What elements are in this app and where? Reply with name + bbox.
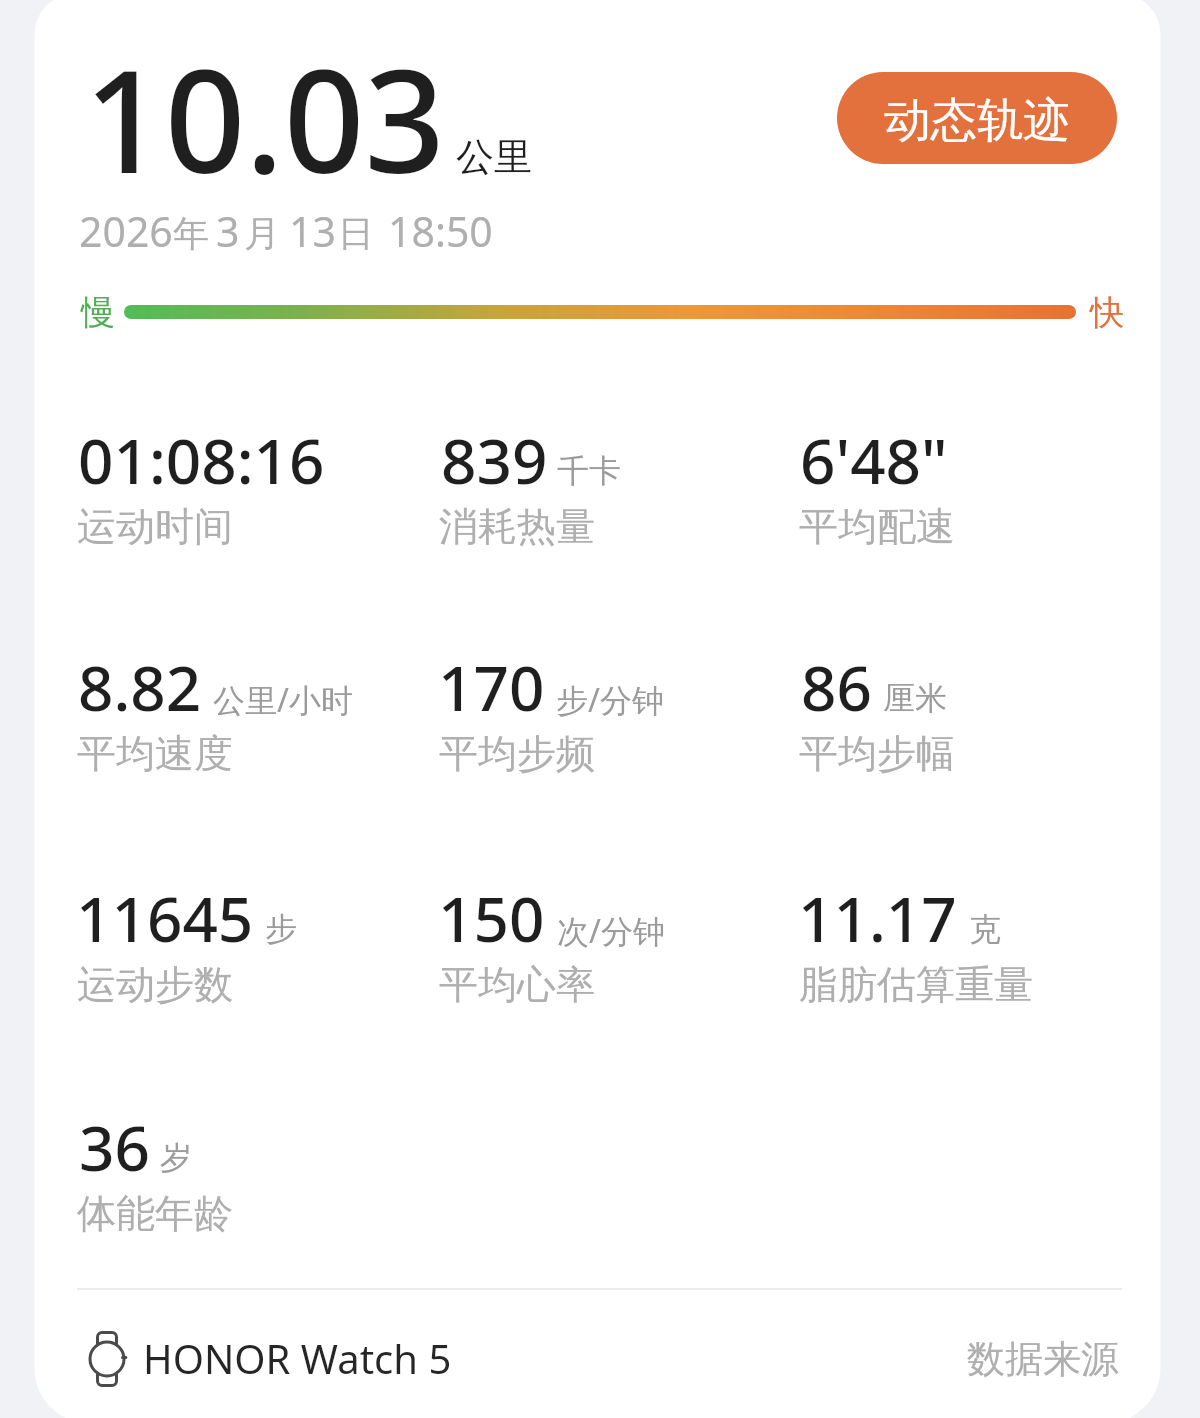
staticText: 839: [441, 418, 548, 502]
staticText: 次/分钟: [557, 909, 665, 953]
staticText: 年: [173, 211, 209, 256]
staticText: 11645: [76, 876, 254, 960]
staticText: 数据来源: [967, 1335, 1119, 1383]
staticText: 01:08:16: [78, 418, 325, 502]
button[interactable]: 数据来源: [947, 1317, 1132, 1401]
staticText: 150: [438, 876, 545, 960]
staticText: 厘米: [883, 678, 947, 718]
other: HONOR Watch 5 device: [88, 1331, 126, 1387]
staticText: 公里: [456, 133, 532, 181]
staticText: 平均步频: [439, 729, 595, 778]
staticText: 公里/小时: [213, 678, 353, 722]
staticText: 克: [969, 909, 1001, 949]
staticText: 脂肪估算重量: [799, 960, 1033, 1009]
staticText: 岁: [160, 1138, 192, 1178]
staticText: 消耗热量: [439, 502, 595, 551]
button[interactable]: HONOR Watch 5 device: [77, 1312, 477, 1406]
staticText: 平均配速: [799, 502, 955, 551]
staticText: 慢: [81, 291, 115, 334]
staticText: 运动时间: [77, 502, 233, 551]
staticText: 平均速度: [77, 729, 233, 778]
staticText: 动态轨迹: [884, 91, 1070, 150]
staticText: 日: [338, 211, 374, 256]
staticText: 170: [438, 645, 545, 729]
staticText: 36: [79, 1105, 150, 1189]
staticText: 月: [244, 211, 280, 256]
staticText: 步: [265, 909, 297, 949]
staticText: 步/分钟: [556, 678, 664, 722]
staticText: 快: [1090, 291, 1124, 334]
staticText: 平均步幅: [799, 729, 955, 778]
staticText: 8.82: [78, 645, 202, 729]
staticText: 2026: [79, 203, 173, 259]
staticText: 运动步数: [77, 960, 233, 1009]
staticText: 千卡: [557, 451, 621, 491]
staticText: 86: [801, 645, 872, 729]
staticText: 3: [216, 203, 240, 259]
staticText: 6'48": [800, 418, 948, 502]
staticText: 18:50: [388, 203, 493, 259]
staticText: 平均心率: [439, 960, 595, 1009]
staticText: HONOR Watch 5: [143, 1331, 452, 1385]
staticText: 体能年龄: [77, 1189, 233, 1238]
staticText: 13: [289, 203, 336, 259]
staticText: 10.03: [84, 22, 445, 214]
button[interactable]: 动态轨迹: [837, 72, 1117, 164]
staticText: 11.17: [798, 876, 957, 960]
